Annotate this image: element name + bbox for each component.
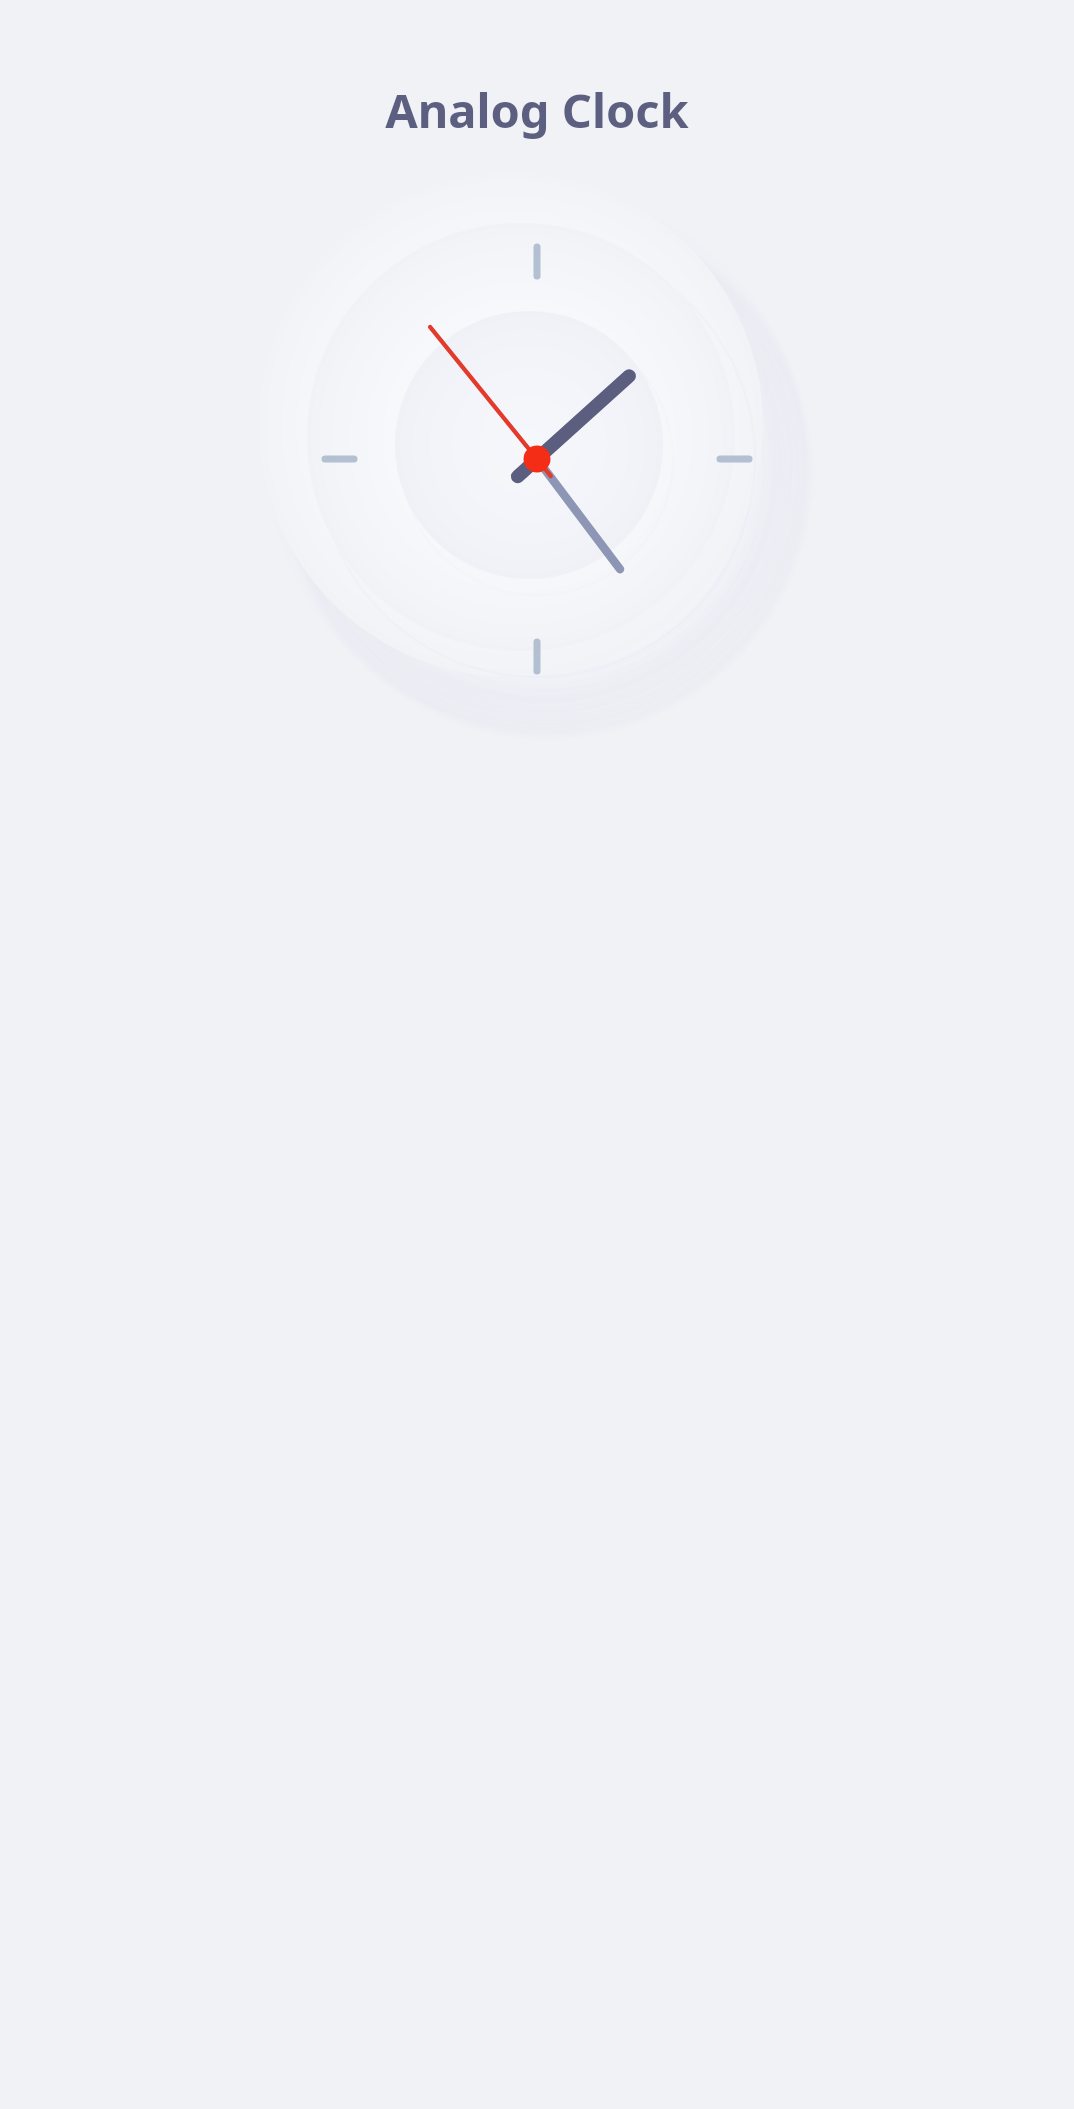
button[interactable]: Analog clock face: [257, 179, 817, 739]
button[interactable]: Analog Clock: [0, 78, 1074, 142]
